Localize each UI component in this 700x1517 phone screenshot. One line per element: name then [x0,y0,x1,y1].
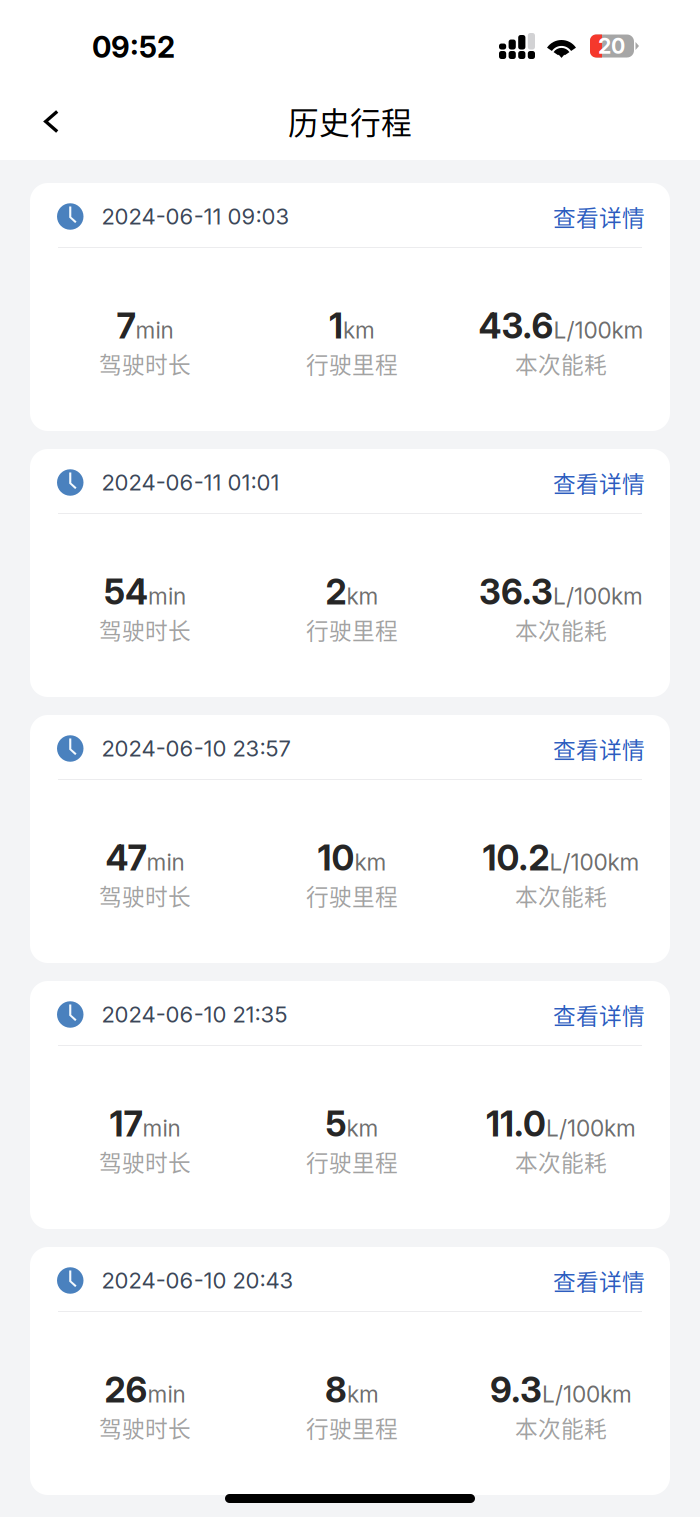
staticText: L/100km [546,1115,636,1142]
staticText: min [146,849,184,876]
staticText: 2024-06-10 23:57 [101,735,290,762]
staticText: km [347,1381,379,1408]
staticText: 10.2 [482,837,549,879]
staticText: 36.3 [479,571,553,613]
staticText: 17 [109,1103,142,1145]
staticText: 本次能耗 [515,347,607,380]
staticText: 09:52 [92,29,175,65]
staticText: 47 [105,837,146,879]
staticText: km [343,317,375,344]
staticText: 7 [116,305,135,347]
staticText: 2024-06-10 20:43 [101,1267,293,1294]
staticText: 查看详情 [553,1264,645,1297]
staticText: 2024-06-10 21:35 [101,1001,287,1028]
staticText: 1 [329,305,343,347]
staticText: 查看详情 [553,466,645,499]
staticText: 2024-06-11 01:01 [101,469,279,496]
staticText: 26 [104,1369,147,1411]
staticText: 历史行程 [288,99,412,143]
button[interactable]: 查看详情 [553,200,645,233]
staticText: min [147,1381,185,1408]
staticText: 驾驶时长 [99,1411,191,1444]
staticText: 行驶里程 [306,1411,398,1444]
staticText: 20 [598,33,625,59]
staticText: 查看详情 [553,200,645,233]
staticText: 驾驶时长 [99,879,191,912]
staticText: 本次能耗 [515,1411,607,1444]
staticText: 驾驶时长 [99,347,191,380]
staticText: 驾驶时长 [99,1145,191,1178]
button[interactable]: 查看详情 [553,1264,645,1297]
staticText: L/100km [549,849,639,876]
staticText: 行驶里程 [306,1145,398,1178]
staticText: min [148,583,186,610]
staticText: km [346,583,378,610]
staticText: 5 [325,1103,346,1145]
staticText: L/100km [542,1381,632,1408]
button[interactable]: 查看详情 [553,732,645,765]
staticText: 43.6 [478,305,553,347]
button[interactable]: Back [0,99,83,153]
button[interactable]: 查看详情 [553,998,645,1031]
staticText: L/100km [553,583,643,610]
staticText: 11.0 [486,1103,546,1145]
staticText: 查看详情 [553,998,645,1031]
staticText: km [354,849,386,876]
staticText: 8 [325,1369,347,1411]
staticText: min [135,317,173,344]
staticText: 2 [325,571,346,613]
staticText: 本次能耗 [515,1145,607,1178]
button[interactable]: 查看详情 [553,466,645,499]
staticText: 54 [104,571,148,613]
staticText: min [142,1115,180,1142]
staticText: 驾驶时长 [99,613,191,646]
staticText: L/100km [553,317,643,344]
staticText: 本次能耗 [515,879,607,912]
staticText: 查看详情 [553,732,645,765]
staticText: 10 [317,837,354,879]
staticText: 行驶里程 [306,879,398,912]
staticText: 本次能耗 [515,613,607,646]
staticText: 2024-06-11 09:03 [101,203,289,230]
staticText: 行驶里程 [306,613,398,646]
staticText: 行驶里程 [306,347,398,380]
staticText: 9.3 [490,1369,542,1411]
staticText: km [346,1115,378,1142]
